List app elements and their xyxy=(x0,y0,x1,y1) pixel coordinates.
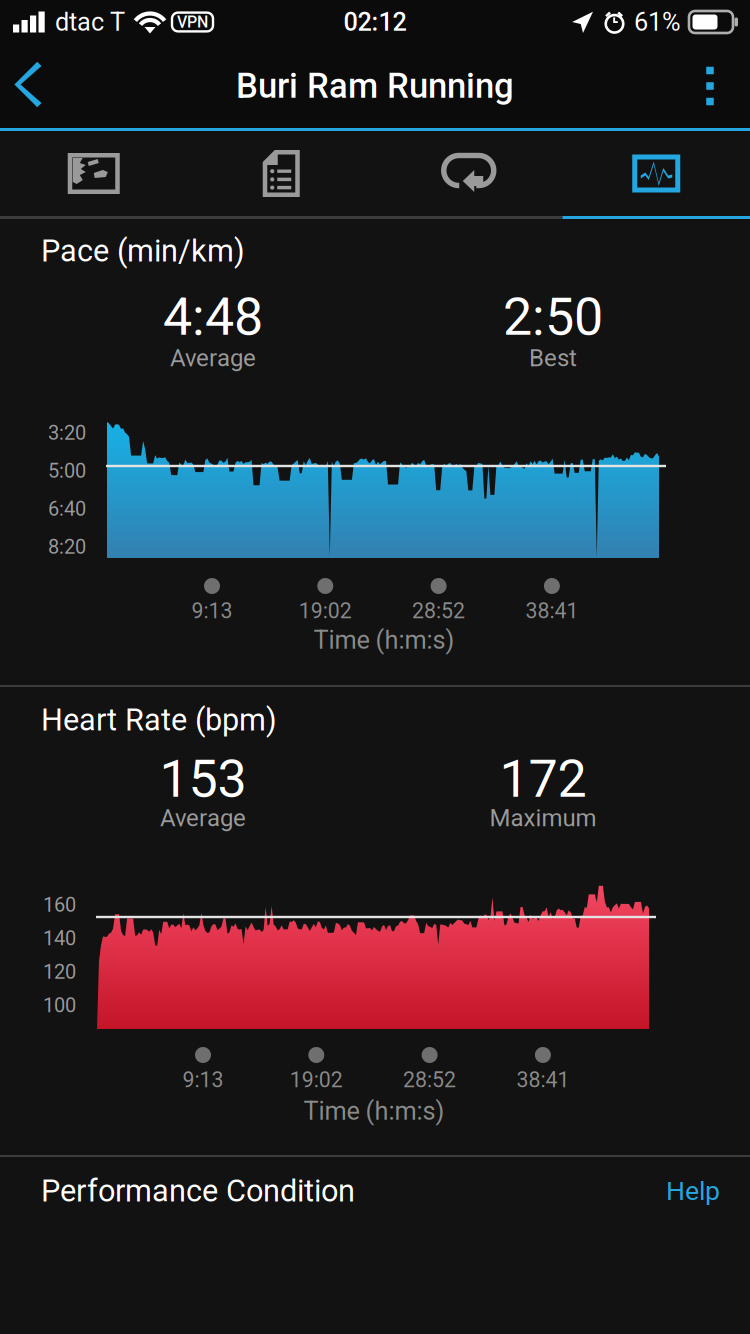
staticText: 160 xyxy=(43,893,76,917)
staticText: 8:20 xyxy=(48,535,86,559)
staticText: 172 xyxy=(499,748,586,809)
staticText: 140 xyxy=(43,927,76,950)
button[interactable]: Help xyxy=(654,1161,732,1221)
staticText: Time (h:m:s) xyxy=(303,1096,444,1126)
staticText: 38:41 xyxy=(516,1067,569,1092)
button[interactable]: Laps xyxy=(375,131,562,216)
staticText: 9:13 xyxy=(191,598,232,623)
staticText: Performance Condition xyxy=(41,1173,355,1209)
staticText: Heart Rate (bpm) xyxy=(41,702,277,738)
staticText: Maximum xyxy=(489,804,596,832)
staticText: Time (h:m:s) xyxy=(313,625,454,655)
staticText: 5:00 xyxy=(48,459,86,483)
staticText: 9:13 xyxy=(182,1067,223,1092)
button[interactable]: More options xyxy=(679,44,741,128)
staticText: Average xyxy=(160,804,246,832)
staticText: 19:02 xyxy=(290,1067,343,1092)
staticText: 19:02 xyxy=(299,598,352,623)
staticText: Buri Ram Running xyxy=(236,66,514,106)
staticText: Best xyxy=(529,344,577,372)
button[interactable]: Charts xyxy=(562,131,750,216)
staticText: 120 xyxy=(43,960,76,984)
staticText: 61% xyxy=(634,7,681,37)
staticText: VPN xyxy=(177,13,208,31)
staticText: 3:20 xyxy=(48,421,86,445)
staticText: 02:12 xyxy=(343,7,406,37)
staticText: 28:52 xyxy=(412,598,465,623)
staticText: Pace (min/km) xyxy=(41,233,245,269)
button[interactable]: Details xyxy=(187,131,375,216)
button[interactable]: Back xyxy=(0,44,62,128)
staticText: 28:52 xyxy=(403,1067,456,1092)
staticText: 38:41 xyxy=(525,598,578,623)
staticText: 4:48 xyxy=(163,286,263,347)
staticText: Average xyxy=(170,344,256,372)
staticText: 153 xyxy=(159,748,246,809)
staticText: Help xyxy=(666,1175,720,1207)
button[interactable]: Map xyxy=(0,131,187,216)
staticText: 6:40 xyxy=(48,497,86,521)
staticText: 2:50 xyxy=(503,286,603,347)
staticText: dtac T xyxy=(55,7,125,37)
staticText: 100 xyxy=(43,994,76,1017)
